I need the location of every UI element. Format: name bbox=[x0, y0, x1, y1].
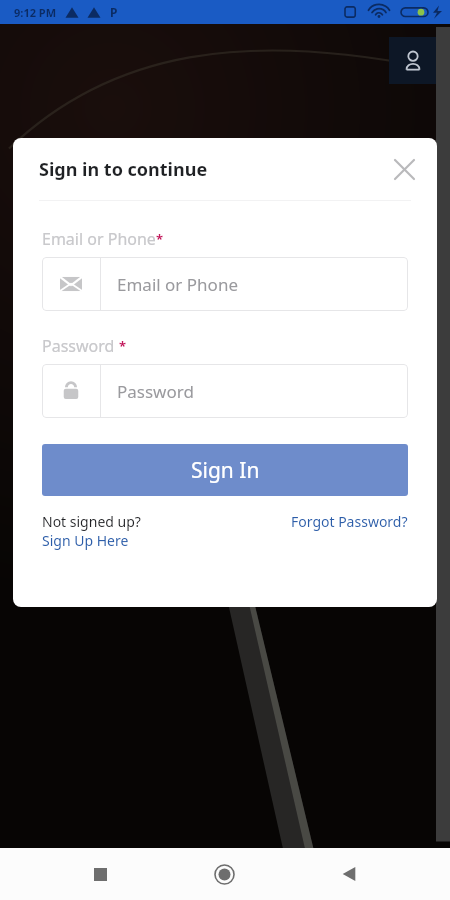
staticText: * bbox=[156, 230, 164, 248]
button[interactable]: Password bbox=[42, 364, 408, 418]
staticText: * bbox=[119, 337, 127, 355]
staticText: Forgot Password? bbox=[291, 512, 408, 531]
staticText: 9:12 PM bbox=[14, 5, 57, 20]
staticText: Password bbox=[42, 335, 115, 357]
button[interactable]: Sign In bbox=[42, 444, 408, 496]
staticText: Not signed up? bbox=[42, 512, 141, 531]
button[interactable]: Email or Phone bbox=[42, 257, 408, 311]
staticText: P bbox=[110, 4, 118, 20]
button[interactable]: Profile bbox=[389, 37, 436, 84]
staticText: Sign Up Here bbox=[42, 531, 129, 550]
button[interactable]: Forgot Password? bbox=[291, 512, 408, 531]
staticText: Sign in to continue bbox=[39, 157, 208, 182]
button[interactable]: Close bbox=[385, 150, 423, 188]
staticText: Email or Phone bbox=[117, 273, 238, 296]
button[interactable]: Back bbox=[325, 850, 373, 898]
button[interactable]: Not signed up? bbox=[42, 512, 291, 550]
button[interactable]: Recent apps bbox=[76, 850, 124, 898]
staticText: Email or Phone bbox=[42, 228, 156, 250]
button[interactable]: Home bbox=[200, 850, 248, 898]
staticText: Password bbox=[117, 380, 194, 403]
staticText: Sign In bbox=[191, 456, 260, 485]
